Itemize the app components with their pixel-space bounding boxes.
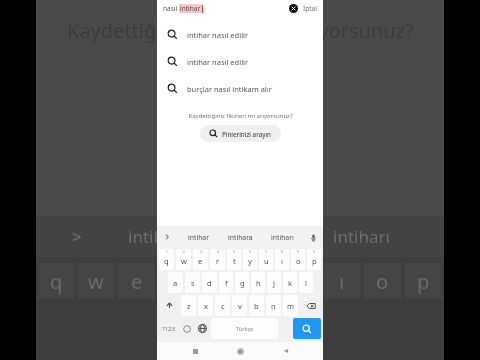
- staticText: o: [296, 256, 301, 266]
- button[interactable]: İptal: [303, 4, 317, 13]
- staticText: 1: [166, 250, 168, 254]
- button[interactable]: Son uygulamalar: [187, 343, 203, 359]
- button[interactable]: intihar nasıl edilir: [157, 23, 323, 46]
- button[interactable]: f: [219, 272, 233, 293]
- button[interactable]: Ara: [293, 318, 321, 339]
- button[interactable]: b: [249, 295, 264, 316]
- button[interactable]: c: [215, 295, 230, 316]
- staticText: 6: [249, 250, 251, 254]
- staticText: w: [181, 256, 187, 266]
- button[interactable]: v: [232, 295, 247, 316]
- staticText: intihar: [180, 4, 201, 13]
- staticText: intihar nasıl edilir: [187, 30, 249, 40]
- button[interactable]: intihar: [177, 226, 219, 248]
- staticText: ?123: [162, 325, 175, 333]
- staticText: l: [305, 278, 307, 288]
- staticText: x: [204, 301, 208, 311]
- staticText: p: [417, 268, 430, 295]
- button[interactable]: 3: [193, 249, 208, 270]
- button[interactable]: l: [299, 272, 313, 293]
- staticText: r: [216, 256, 220, 266]
- button[interactable]: Ana ekran: [232, 343, 248, 359]
- staticText: t: [215, 268, 223, 295]
- button[interactable]: 7: [259, 249, 273, 270]
- button[interactable]: ?123: [159, 318, 178, 339]
- staticText: intihar nasıl edilir: [187, 57, 249, 67]
- staticText: 3: [200, 250, 202, 254]
- button[interactable]: 0: [307, 249, 321, 270]
- staticText: Kaydettiğiniz fikirleri mi arıyorsunuz?: [188, 112, 293, 120]
- button[interactable]: burçlar nasıl intikam alır: [157, 77, 323, 100]
- button[interactable]: Daha fazla: [157, 226, 177, 248]
- button[interactable]: n: [266, 295, 281, 316]
- staticText: 0: [313, 250, 315, 254]
- staticText: ı: [339, 268, 345, 295]
- staticText: Türkçe: [236, 325, 254, 332]
- button[interactable]: Sesle arama: [303, 226, 323, 248]
- staticText: g: [240, 278, 245, 288]
- staticText: e: [198, 256, 203, 266]
- button[interactable]: 6: [243, 249, 257, 270]
- staticText: c: [221, 301, 225, 311]
- staticText: w: [88, 268, 104, 295]
- staticText: >: [72, 225, 82, 248]
- staticText: h: [256, 278, 261, 288]
- button[interactable]: h: [251, 272, 265, 293]
- staticText: b: [254, 301, 259, 311]
- button[interactable]: Shift: [159, 295, 179, 316]
- button[interactable]: g: [235, 272, 249, 293]
- button[interactable]: z: [181, 295, 196, 316]
- staticText: d: [207, 278, 212, 288]
- staticText: j: [273, 278, 275, 288]
- staticText: k: [288, 278, 293, 288]
- button[interactable]: Türkçe: [211, 318, 278, 339]
- button[interactable]: nasıl: [163, 4, 289, 13]
- button[interactable]: Emoji: [180, 318, 193, 339]
- staticText: intihar: [128, 225, 181, 248]
- staticText: 5: [233, 250, 235, 254]
- staticText: burçlar nasıl intikam alır: [187, 84, 272, 94]
- button[interactable]: intihara: [219, 226, 261, 248]
- staticText: 4: [217, 250, 219, 254]
- button[interactable]: Temizle: [289, 4, 298, 13]
- staticText: 7: [265, 250, 267, 254]
- button[interactable]: m: [283, 295, 298, 316]
- staticText: intihara: [228, 233, 253, 242]
- button[interactable]: intihar nasıl edilir: [157, 50, 323, 73]
- button[interactable]: s: [185, 272, 200, 293]
- staticText: y: [248, 256, 252, 266]
- button[interactable]: j: [267, 272, 281, 293]
- staticText: 9: [297, 250, 299, 254]
- staticText: ı: [281, 256, 283, 266]
- button[interactable]: Dil değiştir: [195, 318, 209, 339]
- button[interactable]: x: [198, 295, 213, 316]
- button[interactable]: Geri sil: [300, 295, 321, 316]
- button[interactable]: Geri: [278, 343, 294, 359]
- staticText: n: [271, 301, 276, 311]
- staticText: z: [187, 301, 191, 311]
- staticText: q: [164, 256, 169, 266]
- button[interactable]: a: [168, 272, 183, 293]
- button[interactable]: d: [202, 272, 217, 293]
- staticText: p: [312, 256, 317, 266]
- staticText: s: [191, 278, 195, 288]
- staticText: intihara: [226, 225, 288, 248]
- staticText: 2: [183, 250, 185, 254]
- staticText: Kaydettiğiniz fikirleri mi arıyorsunuz?: [67, 17, 414, 44]
- staticText: q: [50, 268, 63, 295]
- button[interactable]: 8: [275, 249, 289, 270]
- button[interactable]: intiharı: [261, 226, 303, 248]
- button[interactable]: Pinlerinizi arayın: [200, 125, 281, 142]
- button[interactable]: k: [283, 272, 297, 293]
- button[interactable]: 1: [159, 249, 174, 270]
- staticText: u: [294, 268, 307, 295]
- button[interactable]: 9: [291, 249, 305, 270]
- staticText: İptal: [303, 4, 317, 13]
- button[interactable]: 4: [210, 249, 225, 270]
- staticText: u: [264, 256, 269, 266]
- staticText: v: [238, 301, 242, 311]
- button[interactable]: 5: [227, 249, 241, 270]
- staticText: r: [173, 268, 182, 295]
- staticText: m: [287, 301, 295, 311]
- button[interactable]: 2: [176, 249, 191, 270]
